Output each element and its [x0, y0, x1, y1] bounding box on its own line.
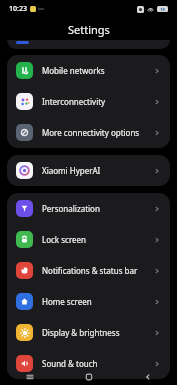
staticText: 18: [160, 7, 165, 12]
staticText: Mobile networks: [42, 65, 105, 76]
button[interactable]: Recents: [0, 368, 59, 385]
staticText: Display & brightness: [42, 327, 120, 338]
button[interactable]: Display & brightness: [7, 317, 170, 348]
button[interactable]: Home screen: [7, 286, 170, 317]
button[interactable]: More connectivity options: [7, 117, 170, 148]
staticText: Home screen: [42, 296, 92, 307]
staticText: Personalization: [42, 203, 100, 214]
staticText: Interconnectivity: [42, 96, 106, 107]
button[interactable]: Xiaomi HyperAI: [7, 155, 170, 186]
staticText: Settings: [68, 22, 110, 37]
button[interactable]: Home: [59, 368, 118, 385]
staticText: Sound & touch: [42, 358, 98, 369]
staticText: Notifications & status bar: [42, 265, 138, 276]
button[interactable]: Mobile networks: [7, 55, 170, 86]
button[interactable]: Interconnectivity: [7, 86, 170, 117]
staticText: Xiaomi HyperAI: [42, 165, 101, 176]
button[interactable]: Sound & touch: [7, 348, 170, 379]
button[interactable]: Lock screen: [7, 224, 170, 255]
button[interactable]: Personalization: [7, 193, 170, 224]
staticText: Lock screen: [42, 234, 87, 245]
button[interactable]: Notifications & status bar: [7, 255, 170, 286]
staticText: 10:23: [9, 4, 27, 14]
staticText: More connectivity options: [42, 127, 140, 138]
button[interactable]: Back: [118, 368, 177, 385]
